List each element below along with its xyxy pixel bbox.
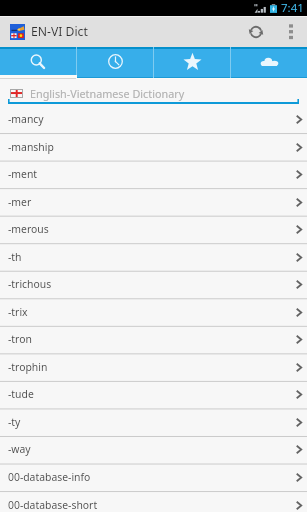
button[interactable]: Favorites bbox=[154, 47, 230, 79]
button[interactable]: -manship bbox=[0, 134, 307, 162]
staticText: -trophin bbox=[8, 360, 48, 374]
staticText: -trichous bbox=[8, 277, 52, 291]
button[interactable]: -way bbox=[0, 436, 307, 464]
staticText: 00-database-info bbox=[8, 470, 91, 484]
button[interactable]: -trix bbox=[0, 299, 307, 327]
staticText: -tron bbox=[8, 332, 32, 346]
staticText: -th bbox=[8, 250, 22, 264]
button[interactable]: -tron bbox=[0, 326, 307, 354]
staticText: English-Vietnamese Dictionary bbox=[30, 86, 185, 101]
button[interactable]: -tude bbox=[0, 381, 307, 409]
button[interactable]: More options bbox=[277, 16, 304, 47]
button[interactable]: 00-database-short bbox=[0, 492, 307, 512]
button[interactable]: Search bbox=[0, 47, 76, 79]
button[interactable]: Refresh bbox=[235, 16, 277, 47]
staticText: -ty bbox=[8, 415, 21, 429]
button[interactable]: -mancy bbox=[0, 106, 307, 134]
staticText: EN-VI Dict bbox=[31, 23, 88, 40]
staticText: 00-database-short bbox=[8, 498, 98, 512]
button[interactable]: -mer bbox=[0, 189, 307, 217]
button[interactable]: -merous bbox=[0, 216, 307, 244]
button[interactable]: English-Vietnamese Dictionary bbox=[0, 79, 307, 106]
staticText: -way bbox=[8, 442, 31, 456]
button[interactable]: -trichous bbox=[0, 271, 307, 299]
staticText: -mancy bbox=[8, 112, 44, 126]
staticText: -merous bbox=[8, 222, 49, 236]
button[interactable]: -ty bbox=[0, 409, 307, 437]
staticText: -tude bbox=[8, 387, 34, 401]
button[interactable]: -ment bbox=[0, 161, 307, 189]
button[interactable]: 00-database-info bbox=[0, 464, 307, 492]
button[interactable]: -trophin bbox=[0, 354, 307, 382]
staticText: -mer bbox=[8, 195, 32, 209]
staticText: -ment bbox=[8, 167, 38, 181]
button[interactable]: Cloud bbox=[231, 47, 307, 79]
staticText: -trix bbox=[8, 305, 28, 319]
button[interactable]: History bbox=[77, 47, 153, 79]
button[interactable]: -th bbox=[0, 244, 307, 272]
staticText: 7:41 bbox=[281, 0, 304, 16]
staticText: -manship bbox=[8, 140, 54, 154]
